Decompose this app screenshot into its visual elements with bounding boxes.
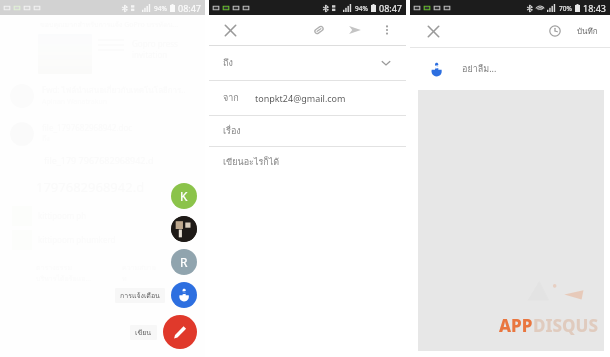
button[interactable]: Close bbox=[219, 19, 241, 41]
button[interactable]: Contact photo bbox=[171, 216, 197, 242]
staticText: 18:43 bbox=[583, 2, 607, 14]
button[interactable]: Attach bbox=[308, 19, 330, 41]
staticText: การแจ้งเตือน bbox=[120, 290, 160, 301]
button[interactable]: Contact R bbox=[171, 249, 197, 275]
staticText: เขียนอะไรก็ได้ bbox=[223, 155, 280, 169]
staticText: K bbox=[180, 188, 188, 204]
staticText: 94% bbox=[355, 4, 368, 13]
staticText: ถึง bbox=[223, 56, 233, 70]
button[interactable]: More options bbox=[378, 21, 396, 39]
button[interactable]: Set time bbox=[545, 21, 565, 41]
staticText: tonpkt24@gmail.com bbox=[255, 92, 346, 104]
staticText: R bbox=[180, 254, 188, 270]
staticText: 08:47 bbox=[178, 2, 202, 14]
button[interactable]: Send bbox=[344, 19, 366, 41]
staticText: เรื่อง bbox=[223, 124, 241, 138]
button[interactable]: จาก bbox=[209, 81, 406, 115]
button[interactable]: อย่าลืม... bbox=[410, 48, 610, 90]
staticText: APP bbox=[499, 314, 533, 337]
staticText: 70% bbox=[559, 4, 572, 13]
button[interactable]: เขียนอะไรก็ได้ bbox=[209, 147, 406, 357]
staticText: เขียน bbox=[135, 327, 152, 338]
staticText: DISQUS bbox=[533, 314, 598, 337]
staticText: อย่าลืม... bbox=[462, 62, 497, 76]
button[interactable]: ถึง bbox=[209, 46, 406, 80]
button[interactable]: เรื่อง bbox=[209, 116, 406, 146]
staticText: 94% bbox=[154, 4, 167, 13]
button[interactable]: บันทึก bbox=[575, 21, 600, 42]
staticText: บันทึก bbox=[577, 25, 598, 38]
staticText: 08:47 bbox=[379, 2, 403, 14]
button[interactable]: Compose bbox=[163, 315, 197, 349]
button[interactable]: Close bbox=[422, 20, 444, 42]
staticText: จาก bbox=[223, 91, 239, 105]
button[interactable]: Reminder bbox=[171, 282, 197, 308]
button[interactable]: Contact K bbox=[171, 183, 197, 209]
